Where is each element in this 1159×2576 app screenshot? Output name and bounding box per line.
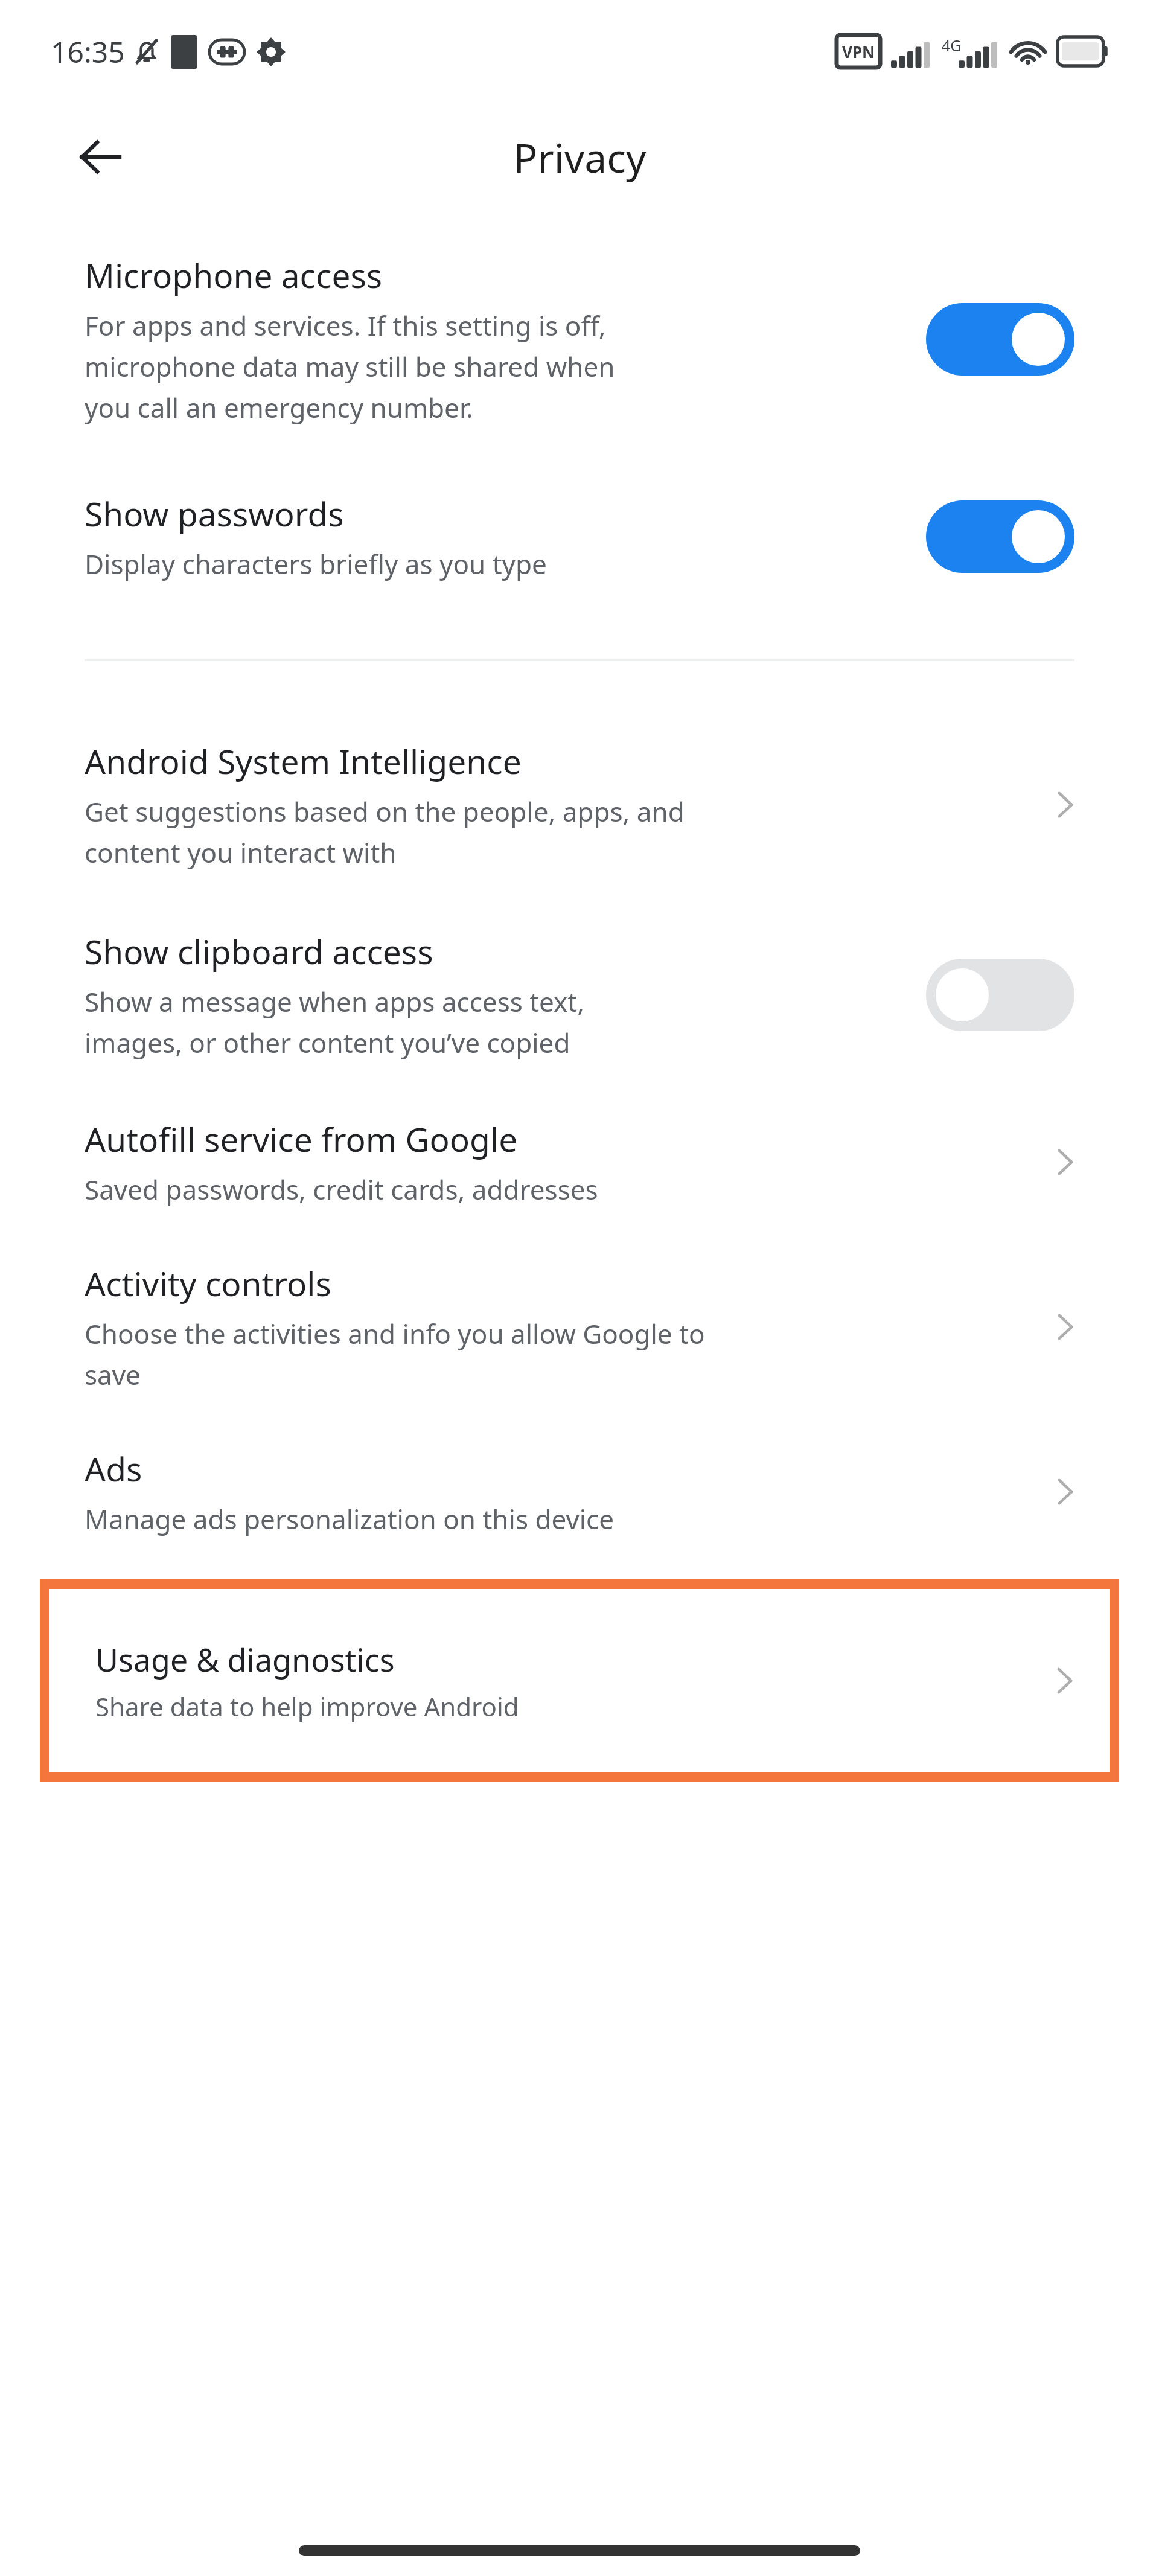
button[interactable]: Show passwords bbox=[0, 480, 1159, 593]
button[interactable]: Usage & diagnostics bbox=[49, 1589, 1110, 1772]
staticText: Ads bbox=[85, 1446, 142, 1491]
staticText: Manage ads personalization on this devic… bbox=[85, 1501, 615, 1537]
button[interactable]: Microphone access bbox=[0, 238, 1159, 440]
other: Open Autofill service from Google bbox=[1038, 1135, 1093, 1189]
staticText: Display characters briefly as you type bbox=[85, 546, 547, 582]
staticText: Choose the activities and info you allow… bbox=[85, 1315, 705, 1352]
staticText: Get suggestions based on the people, app… bbox=[85, 793, 685, 829]
staticText: Microphone access bbox=[85, 252, 383, 298]
staticText: Activity controls bbox=[85, 1261, 331, 1306]
button[interactable]: On bbox=[926, 500, 1074, 573]
staticText: VPN bbox=[842, 41, 875, 62]
staticText: Show passwords bbox=[85, 491, 344, 536]
other: Open Activity controls bbox=[1038, 1300, 1093, 1354]
staticText: For apps and services. If this setting i… bbox=[85, 307, 606, 344]
staticText: Show clipboard access bbox=[85, 928, 433, 974]
button[interactable]: On bbox=[926, 303, 1074, 376]
staticText: Autofill service from Google bbox=[85, 1116, 518, 1162]
staticText: Android System Intelligence bbox=[85, 738, 522, 784]
staticText: save bbox=[85, 1357, 141, 1393]
staticText: microphone data may still be shared when bbox=[85, 348, 615, 385]
button[interactable]: Android System Intelligence bbox=[0, 729, 1159, 880]
other: Open Android System Intelligence bbox=[1038, 778, 1093, 832]
staticText: you call an emergency number. bbox=[85, 389, 473, 426]
staticText: 16:35 bbox=[51, 32, 125, 71]
staticText: 4G bbox=[942, 35, 962, 56]
button[interactable]: Autofill service from Google bbox=[0, 1107, 1159, 1217]
other: Open Usage & diagnostics bbox=[1036, 1652, 1094, 1710]
staticText: content you interact with bbox=[85, 834, 397, 871]
button[interactable]: Off bbox=[926, 959, 1074, 1031]
button[interactable]: Ads bbox=[0, 1436, 1159, 1547]
button[interactable]: Activity controls bbox=[0, 1251, 1159, 1402]
staticText: Show a message when apps access text, bbox=[85, 983, 584, 1020]
staticText: Privacy bbox=[513, 130, 647, 184]
other: Open Ads bbox=[1038, 1465, 1093, 1519]
staticText: images, or other content you’ve copied bbox=[85, 1024, 570, 1061]
button[interactable]: Show clipboard access bbox=[0, 916, 1159, 1073]
staticText: Saved passwords, credit cards, addresses bbox=[85, 1171, 598, 1207]
staticText: Usage & diagnostics bbox=[95, 1638, 395, 1681]
staticText: Share data to help improve Android bbox=[95, 1689, 519, 1724]
button[interactable]: Back bbox=[68, 124, 134, 190]
